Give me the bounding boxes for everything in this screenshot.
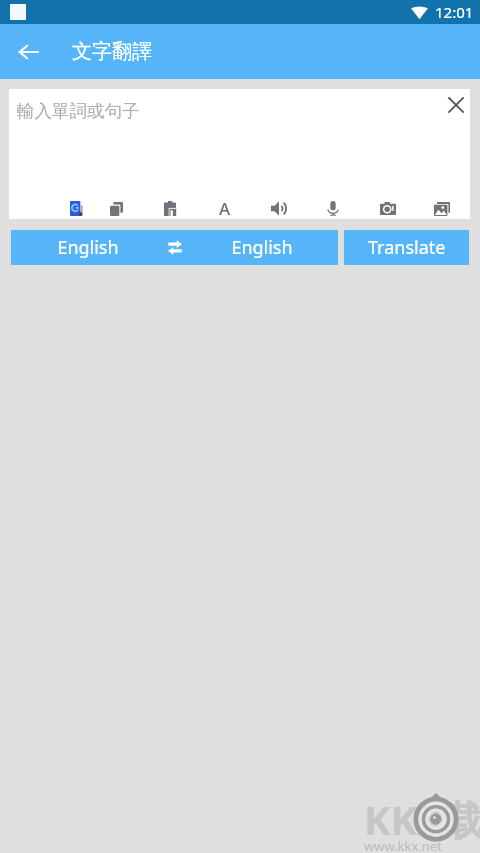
button[interactable]: Voice input — [319, 195, 346, 219]
button[interactable]: Copy — [103, 195, 130, 219]
staticText: 文字翻譯 — [72, 39, 152, 64]
button[interactable]: Camera — [374, 195, 401, 219]
staticText: www.kkx.net — [364, 837, 442, 853]
button[interactable]: English — [185, 230, 338, 265]
button[interactable]: Back — [6, 30, 50, 74]
staticText: KKX载 — [364, 792, 480, 847]
staticText: 輸入單詞或句子 — [17, 100, 140, 122]
button[interactable]: Listen — [265, 195, 292, 219]
button[interactable]: Google translate — [63, 195, 90, 219]
staticText: English — [231, 235, 293, 260]
staticText: Translate — [368, 235, 446, 260]
button[interactable]: Clear text — [433, 89, 470, 121]
button[interactable]: Text size — [211, 195, 238, 219]
staticText: 12:01 — [435, 2, 474, 22]
button[interactable]: Paste — [157, 195, 184, 219]
button[interactable]: Image — [428, 195, 455, 219]
button[interactable]: 輸入單詞或句子 — [9, 89, 470, 189]
button[interactable]: Translate — [344, 230, 469, 265]
button[interactable]: English — [11, 230, 164, 265]
button[interactable]: Swap languages — [164, 230, 185, 265]
staticText: A — [219, 197, 231, 219]
staticText: English — [57, 235, 119, 260]
